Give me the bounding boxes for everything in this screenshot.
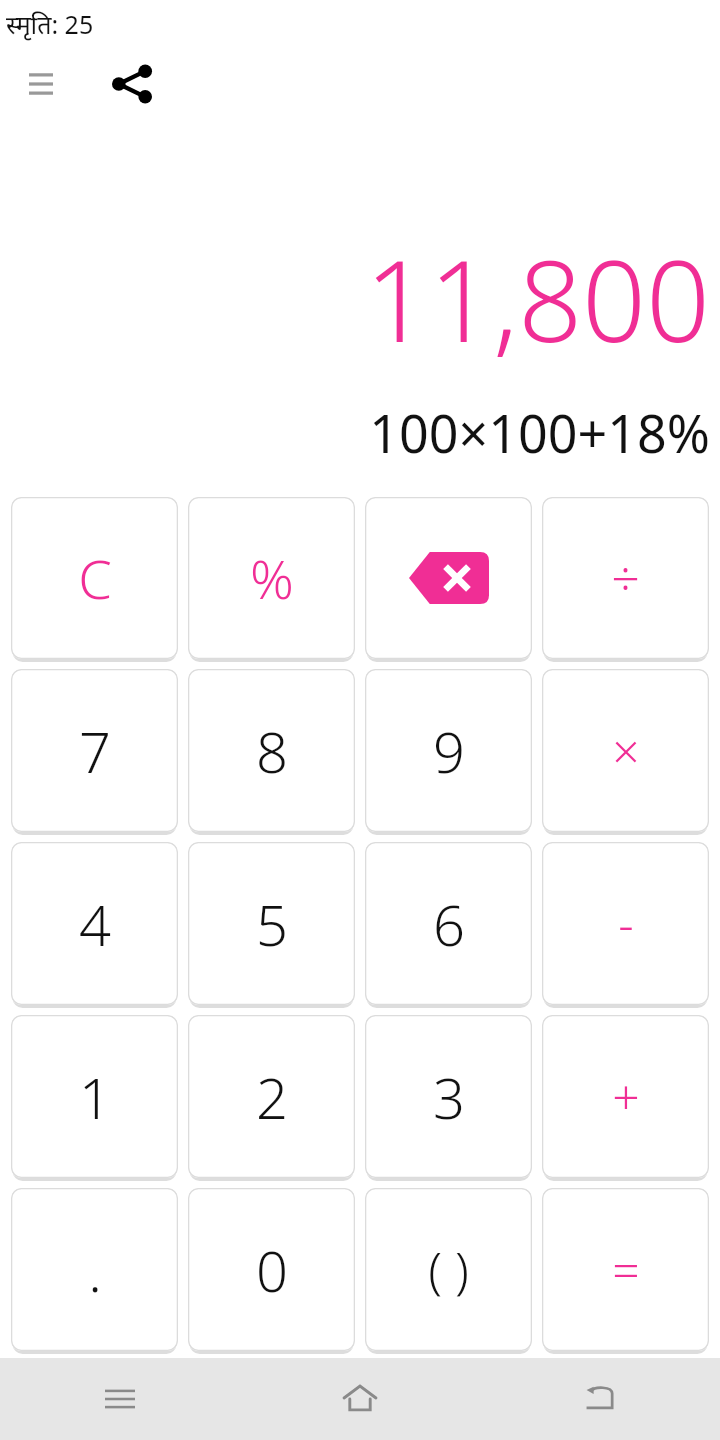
staticText: 3 — [433, 1059, 465, 1135]
button[interactable]: . — [11, 1188, 178, 1351]
button[interactable]: 2 — [188, 1015, 355, 1178]
staticText: 2 — [256, 1059, 288, 1135]
button[interactable]: 0 — [188, 1188, 355, 1351]
staticText: - — [618, 891, 634, 956]
staticText: 7 — [79, 713, 111, 789]
button[interactable]: = — [542, 1188, 709, 1351]
button[interactable]: 1 — [11, 1015, 178, 1178]
button[interactable]: Menu — [14, 57, 68, 111]
button[interactable]: Recent apps — [0, 1358, 240, 1440]
button[interactable]: 5 — [188, 842, 355, 1005]
button[interactable]: Backspace — [365, 497, 532, 659]
button[interactable]: 6 — [365, 842, 532, 1005]
staticText: 5 — [256, 886, 288, 962]
staticText: 0 — [256, 1232, 288, 1308]
staticText: 1 — [79, 1059, 111, 1135]
staticText: 100×100+18% — [369, 397, 710, 468]
button[interactable]: + — [542, 1015, 709, 1178]
button[interactable]: 3 — [365, 1015, 532, 1178]
staticText: ( ) — [428, 1236, 469, 1304]
staticText: 11,800 — [365, 222, 710, 375]
staticText: 4 — [79, 886, 111, 962]
staticText: . — [88, 1232, 102, 1308]
button[interactable]: % — [188, 497, 355, 659]
staticText: = — [612, 1237, 640, 1302]
button[interactable]: 7 — [11, 669, 178, 832]
staticText: 8 — [256, 713, 288, 789]
staticText: 6 — [433, 886, 465, 962]
staticText: ÷ — [611, 544, 640, 612]
button[interactable]: Back — [480, 1358, 720, 1440]
button[interactable]: × — [542, 669, 709, 832]
staticText: % — [250, 541, 294, 615]
button[interactable]: - — [542, 842, 709, 1005]
staticText: स्मृति: 25 — [6, 7, 94, 41]
button[interactable]: Share — [104, 56, 160, 112]
staticText: C — [78, 541, 112, 615]
button[interactable]: Home — [240, 1358, 480, 1440]
button[interactable]: ( ) — [365, 1188, 532, 1351]
button[interactable]: 8 — [188, 669, 355, 832]
staticText: + — [612, 1064, 640, 1129]
staticText: × — [612, 718, 640, 783]
button[interactable]: ÷ — [542, 497, 709, 659]
button[interactable]: C — [11, 497, 178, 659]
button[interactable]: 9 — [365, 669, 532, 832]
staticText: 9 — [433, 713, 465, 789]
button[interactable]: 4 — [11, 842, 178, 1005]
